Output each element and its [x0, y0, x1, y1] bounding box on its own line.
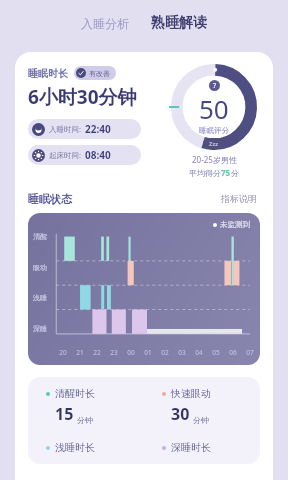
staticText: 分钟	[193, 415, 209, 425]
staticText: 21	[76, 348, 84, 357]
staticText: 入睡时间:	[49, 124, 82, 134]
staticText: 22:40	[85, 122, 111, 136]
staticText: 75	[221, 167, 231, 178]
staticText: 6小时30分钟	[28, 84, 137, 110]
staticText: 50	[199, 91, 229, 126]
staticText: 06	[229, 348, 237, 357]
staticText: 30	[171, 403, 190, 425]
button[interactable]: 帮助	[209, 80, 220, 91]
staticText: 15	[55, 403, 74, 425]
button[interactable]: 起床时间:	[28, 145, 141, 165]
staticText: 07	[246, 348, 254, 357]
staticText: 00	[127, 348, 135, 357]
staticText: 入睡分析	[81, 16, 129, 31]
button[interactable]: 有改善	[74, 66, 116, 80]
staticText: 睡眠状态	[28, 192, 72, 206]
staticText: 深睡	[33, 324, 47, 333]
staticText: 未监测到	[220, 220, 250, 229]
staticText: ?	[213, 81, 217, 91]
button[interactable]: 指标说明	[218, 190, 260, 207]
staticText: 指标说明	[221, 193, 257, 204]
staticText: 睡眠评分	[199, 126, 229, 135]
button[interactable]: 入睡分析	[75, 12, 135, 35]
button[interactable]: 熟睡解读	[145, 10, 213, 36]
staticText: 分	[231, 168, 239, 178]
staticText: 05	[212, 348, 220, 357]
button[interactable]: 清醒时长	[28, 387, 144, 425]
staticText: 08:40	[85, 148, 111, 162]
staticText: 睡眠时长	[28, 67, 68, 80]
staticText: 起床时间:	[49, 150, 82, 160]
staticText: 浅睡	[33, 293, 47, 302]
staticText: 22	[93, 348, 101, 357]
staticText: 23	[110, 348, 118, 357]
staticText: 深睡时长	[171, 441, 211, 454]
staticText: 02	[161, 348, 169, 357]
staticText: 有改善	[89, 69, 110, 78]
button[interactable]: 深睡时长	[144, 441, 260, 454]
staticText: 熟睡解读	[151, 14, 207, 32]
staticText: 20-25岁男性	[192, 154, 237, 165]
button[interactable]: 快速眼动	[144, 387, 260, 425]
staticText: 清醒	[33, 232, 47, 241]
staticText: 清醒时长	[55, 387, 95, 400]
staticText: 分钟	[77, 415, 93, 425]
staticText: 快速眼动	[171, 387, 211, 400]
staticText: 平均得分	[189, 168, 221, 178]
staticText: 04	[195, 348, 203, 357]
button[interactable]: 浅睡时长	[28, 441, 144, 454]
staticText: 眼动	[33, 263, 47, 272]
button[interactable]: 入睡时间:	[28, 119, 141, 139]
staticText: Zzz	[209, 140, 219, 148]
staticText: 20	[59, 348, 67, 357]
staticText: 03	[178, 348, 186, 357]
staticText: 浅睡时长	[55, 441, 95, 454]
staticText: 01	[144, 348, 152, 357]
